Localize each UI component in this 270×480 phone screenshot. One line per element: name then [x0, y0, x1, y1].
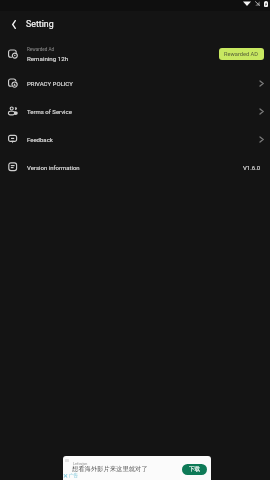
staticText: Terms of Service: [27, 108, 72, 115]
button[interactable]: 下载: [182, 464, 207, 475]
button[interactable]: Back: [4, 11, 23, 38]
staticText: Rewarded Ad: [27, 47, 55, 52]
staticText: Lefovjsn: [73, 461, 88, 466]
button[interactable]: Version information: [0, 153, 270, 181]
staticText: V1.6.0: [243, 164, 261, 171]
staticText: 想看海外影片来这里就对了: [72, 465, 148, 473]
button[interactable]: Rewarded AD: [219, 48, 264, 60]
staticText: Setting: [26, 19, 54, 29]
staticText: Remaining 12h: [27, 55, 69, 62]
button[interactable]: Feedback: [0, 125, 270, 153]
staticText: Version information: [27, 164, 80, 171]
staticText: PRIVACY POLICY: [27, 80, 73, 87]
staticText: Feedback: [27, 136, 53, 143]
staticText: 广告: [69, 473, 79, 479]
button[interactable]: Rewarded Ad: [0, 40, 270, 68]
staticText: 下载: [189, 466, 201, 473]
staticText: ✕: [63, 472, 69, 479]
staticText: Rewarded AD: [224, 51, 259, 58]
button[interactable]: Terms of Service: [0, 97, 270, 125]
button[interactable]: PRIVACY POLICY: [0, 69, 270, 97]
button[interactable]: Lefovjsn: [63, 456, 211, 480]
